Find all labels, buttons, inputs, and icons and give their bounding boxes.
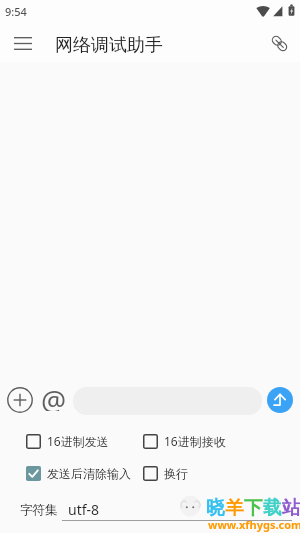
button[interactable]: 发送后清除输入	[26, 466, 131, 481]
button[interactable]: 换行	[143, 466, 188, 481]
button[interactable]: 16进制发送	[26, 433, 109, 449]
staticText: 发送后清除输入	[47, 466, 131, 481]
button[interactable]: At	[39, 381, 69, 411]
button[interactable]: Disconnect	[260, 24, 298, 62]
staticText: 下	[244, 496, 263, 519]
button[interactable]: Menu	[4, 24, 42, 62]
button[interactable]: Add	[7, 387, 33, 413]
staticText: @	[41, 381, 67, 411]
staticText: utf-8	[68, 500, 100, 519]
staticText: www.xfhygs.com	[208, 517, 300, 532]
button[interactable]: 16进制接收	[143, 433, 226, 449]
staticText: 9:54	[5, 4, 27, 19]
staticText: 字符集	[20, 502, 58, 518]
staticText: 载	[263, 496, 282, 519]
staticText: 换行	[164, 466, 188, 481]
staticText: 网络调试助手	[55, 34, 163, 57]
staticText: 羊	[225, 496, 244, 519]
staticText: 晓	[206, 496, 225, 519]
staticText: 16进制发送	[47, 433, 109, 449]
button[interactable]: utf-8	[62, 499, 292, 521]
staticText: 16进制接收	[164, 433, 226, 449]
button[interactable]: Send	[267, 387, 293, 413]
staticText: 站	[282, 496, 300, 519]
